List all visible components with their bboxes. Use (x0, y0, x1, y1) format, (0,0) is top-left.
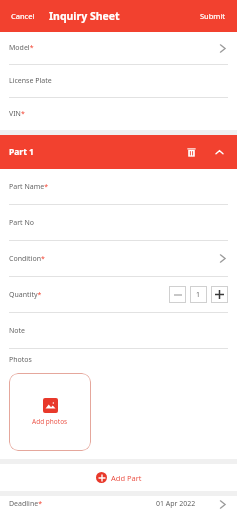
button[interactable]: Cancel (9, 7, 37, 25)
button[interactable]: Delete part (182, 143, 200, 161)
staticText: Deadline* (9, 499, 43, 509)
button[interactable]: Collapse part (210, 143, 228, 161)
staticText: Condition* (9, 254, 45, 264)
button[interactable]: Increase quantity (211, 286, 228, 303)
button[interactable]: Part No (0, 205, 237, 241)
button[interactable]: Deadline* (0, 496, 237, 512)
button[interactable]: License Plate (0, 65, 237, 98)
staticText: 01 Apr 2022 (156, 499, 196, 509)
staticText: 1 (196, 290, 201, 300)
staticText: Cancel (11, 11, 35, 21)
staticText: Photos (9, 355, 32, 365)
button[interactable]: Part Name* (0, 169, 237, 205)
button[interactable]: VIN* (0, 98, 237, 130)
staticText: License Plate (9, 76, 52, 86)
button[interactable]: Submit (198, 7, 228, 25)
button[interactable]: Decrease quantity (169, 286, 186, 303)
staticText: Submit (200, 11, 226, 21)
staticText: Add photos (32, 417, 68, 426)
staticText: Part No (9, 218, 34, 228)
staticText: VIN* (9, 109, 25, 119)
button[interactable]: Note (0, 313, 237, 349)
staticText: Quantity* (9, 290, 42, 300)
button[interactable]: Add photos (9, 373, 91, 451)
staticText: Note (9, 326, 26, 336)
staticText: Add Part (111, 473, 142, 483)
button[interactable]: Model* (0, 32, 237, 65)
button[interactable]: Condition* (0, 241, 237, 277)
staticText: Model* (9, 43, 34, 53)
staticText: Part Name* (9, 182, 48, 192)
button[interactable]: Add Part (0, 464, 237, 491)
staticText: Part 1 (9, 146, 34, 158)
staticText: Inquiry Sheet (49, 9, 120, 23)
